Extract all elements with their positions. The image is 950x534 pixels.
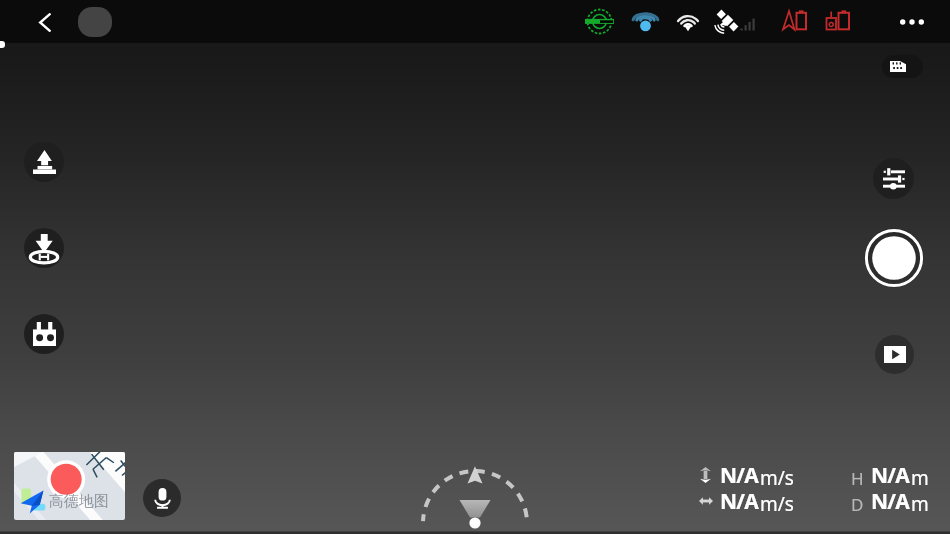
button[interactable]: Return to home <box>24 228 64 268</box>
staticText: N/A <box>720 487 758 516</box>
button[interactable]: Flight mode <box>78 7 112 37</box>
staticText: N/A <box>720 461 758 490</box>
staticText: H <box>851 467 864 490</box>
button[interactable]: Take off <box>24 142 64 182</box>
button[interactable]: Aircraft battery <box>778 9 810 34</box>
button[interactable]: GPS satellites <box>713 8 763 36</box>
staticText: m <box>911 465 929 491</box>
button[interactable]: Remote controller <box>24 314 64 354</box>
staticText: D <box>851 493 864 516</box>
button[interactable]: More options <box>892 8 932 36</box>
button[interactable]: Remote controller battery <box>824 9 856 34</box>
button[interactable]: Playback <box>875 335 914 374</box>
staticText: m/s <box>760 491 794 517</box>
button[interactable]: Voice <box>143 479 181 517</box>
staticText: m/s <box>760 465 794 491</box>
button[interactable]: Camera settings <box>873 158 914 199</box>
button[interactable]: Back <box>30 5 60 39</box>
staticText: m <box>911 491 929 517</box>
staticText: N/A <box>871 487 909 516</box>
button[interactable]: Wi-Fi <box>675 9 701 35</box>
button[interactable]: Flight status <box>586 8 613 35</box>
staticText: N/A <box>871 461 909 490</box>
button[interactable]: Signal <box>632 8 659 35</box>
button[interactable]: Map <box>14 452 125 520</box>
button[interactable]: Shutter <box>864 228 924 288</box>
staticText: 高德地图 <box>49 492 109 511</box>
button[interactable]: Storage <box>882 55 923 78</box>
